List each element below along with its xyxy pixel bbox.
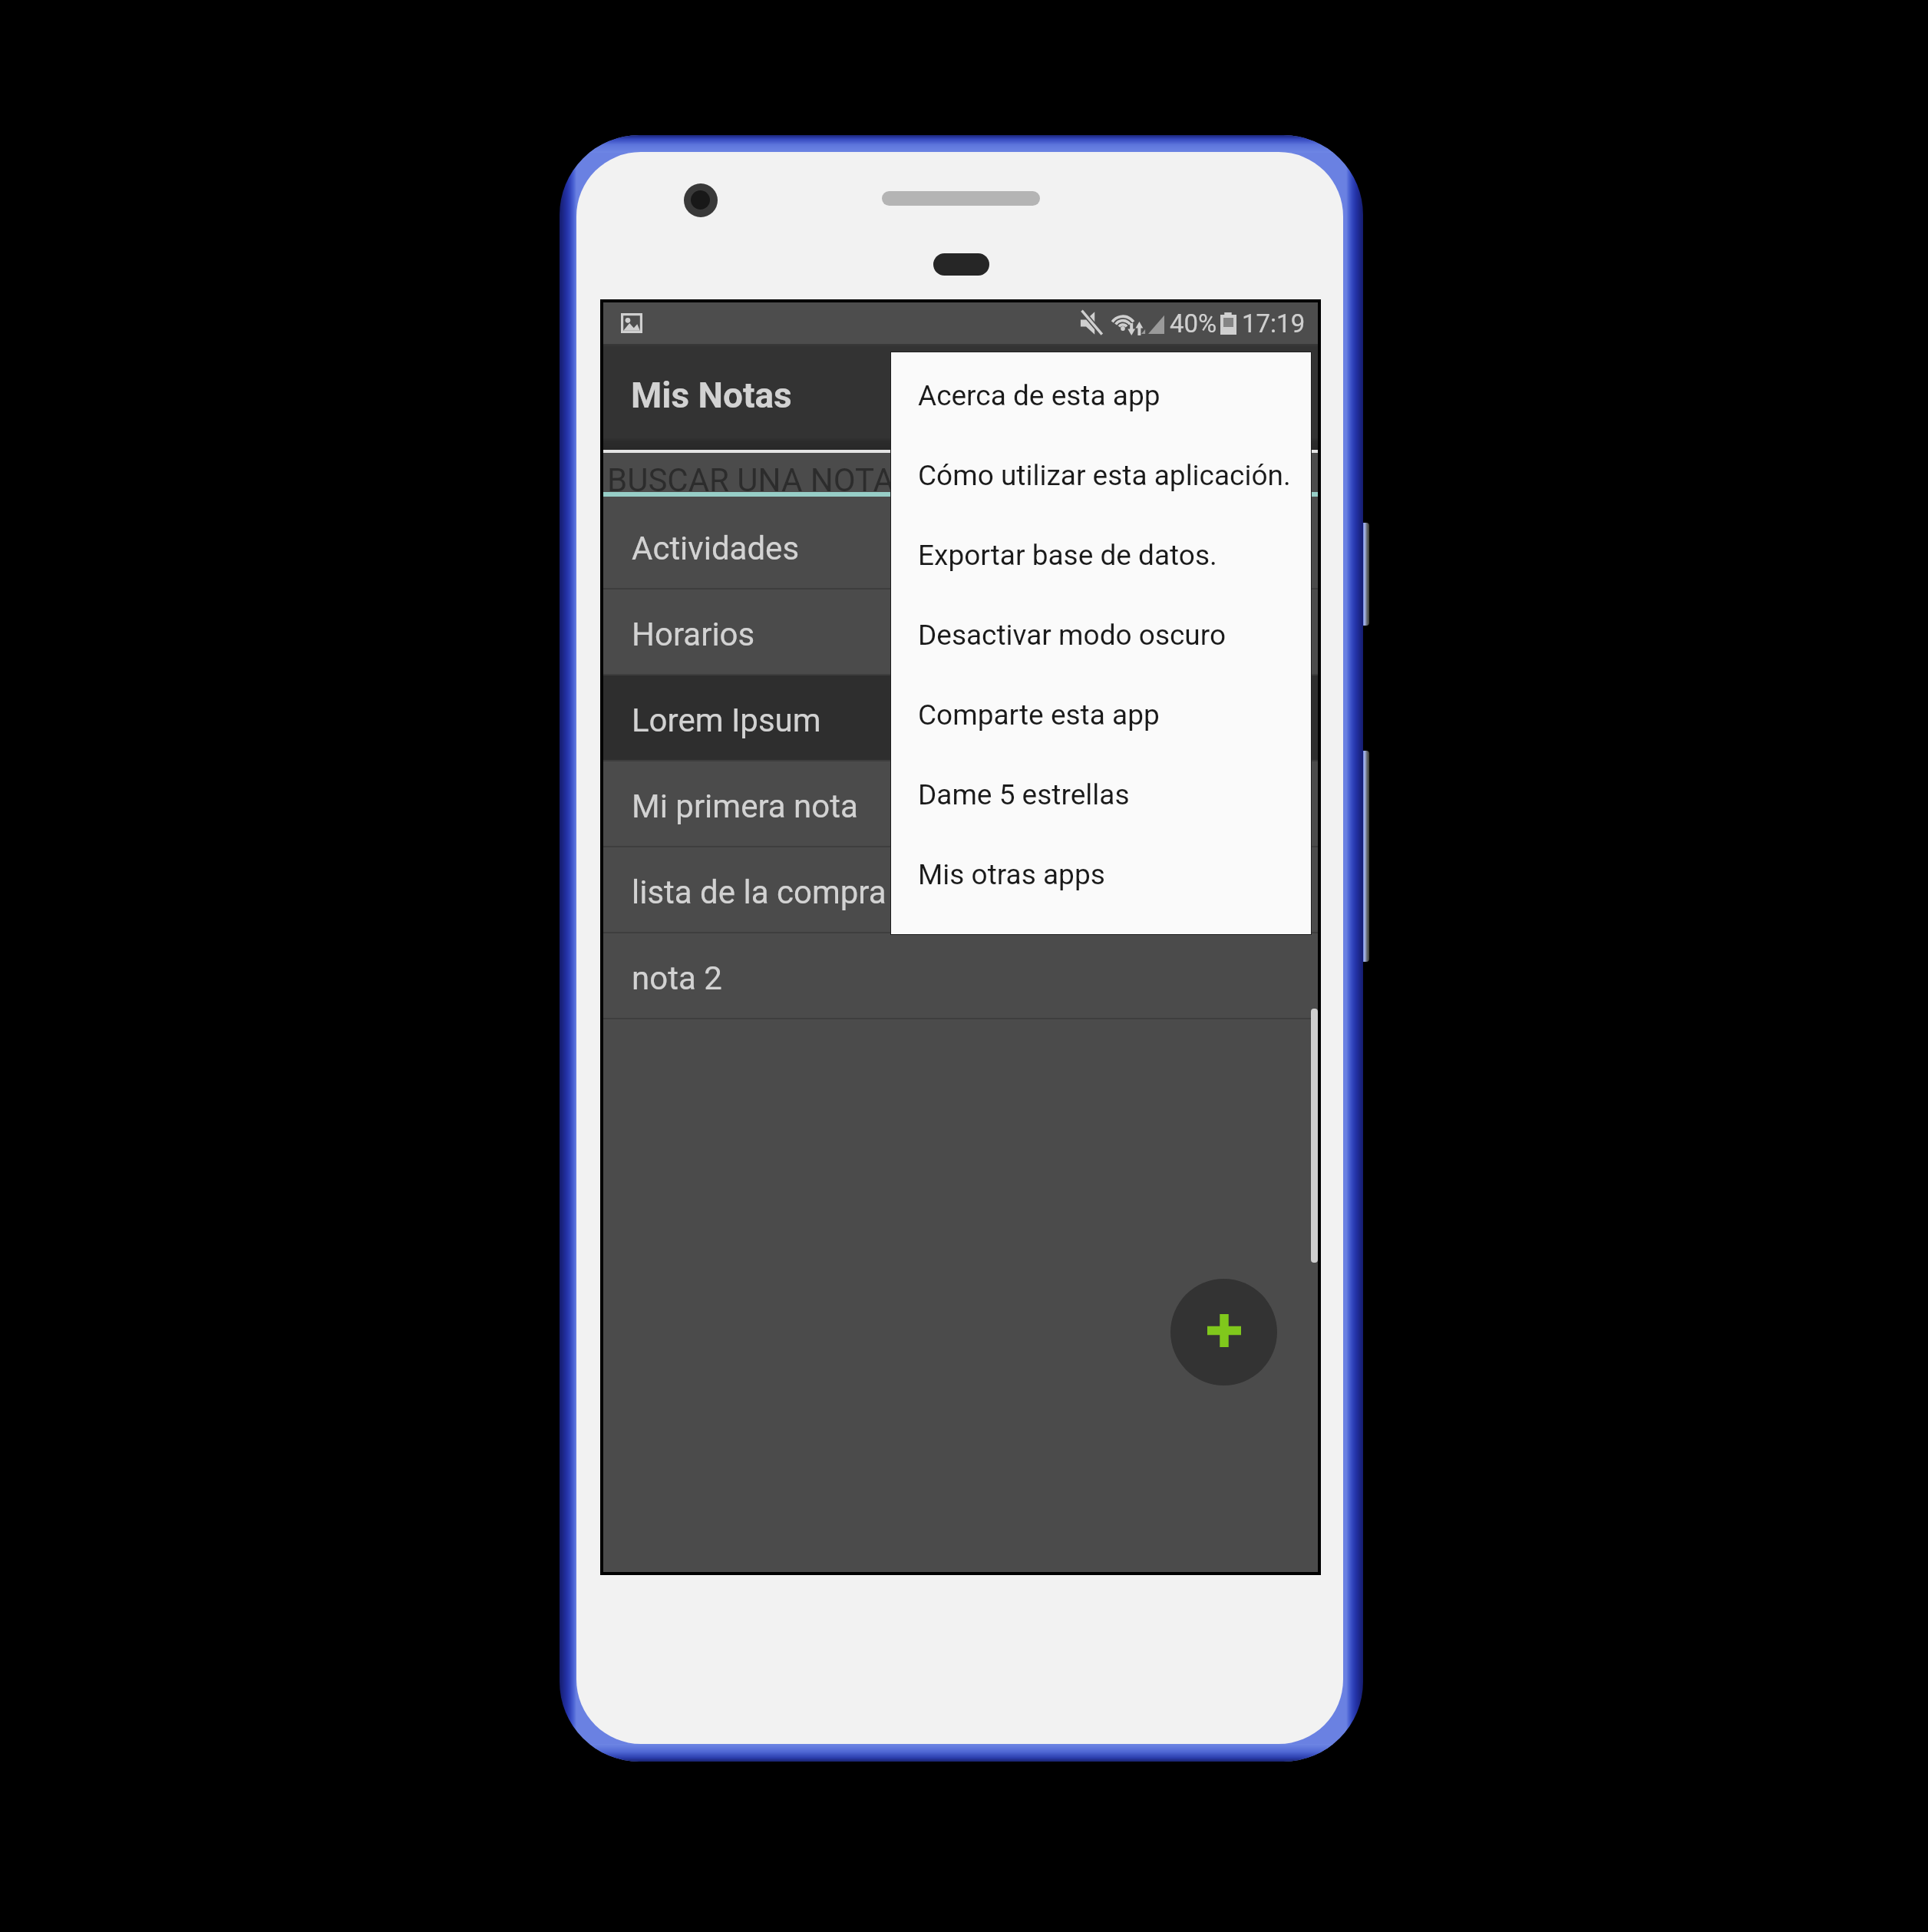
button[interactable]: Add note xyxy=(1170,1279,1277,1385)
button[interactable]: Lorem Ipsum xyxy=(603,675,1318,761)
button[interactable]: Exportar base de datos. xyxy=(891,515,1311,595)
button[interactable]: Comparte esta app xyxy=(891,675,1311,755)
staticText: Horarios xyxy=(632,616,755,653)
button[interactable]: Horarios xyxy=(603,590,1318,675)
staticText: Comparte esta app xyxy=(918,698,1160,732)
button[interactable]: Mis otras apps xyxy=(891,834,1311,914)
staticText: Cómo utilizar esta aplicación. xyxy=(918,459,1291,492)
staticText: nota 2 xyxy=(632,959,722,997)
staticText: Desactivar modo oscuro xyxy=(918,619,1226,652)
button[interactable]: nota 2 xyxy=(603,933,1318,1019)
staticText: 17:19 xyxy=(1242,309,1306,339)
staticText: lista de la compra xyxy=(632,874,886,911)
button[interactable]: Actividades xyxy=(603,504,1318,590)
staticText: Lorem Ipsum xyxy=(632,702,821,739)
staticText: BUSCAR UNA NOTA xyxy=(607,461,894,499)
button[interactable]: Dame 5 estrellas xyxy=(891,755,1311,834)
button[interactable]: Cómo utilizar esta aplicación. xyxy=(891,435,1311,515)
button[interactable]: lista de la compra xyxy=(603,847,1318,933)
staticText: Exportar base de datos. xyxy=(918,539,1217,572)
staticText: Acerca de esta app xyxy=(918,379,1160,412)
staticText: Mis otras apps xyxy=(918,858,1105,891)
staticText: Dame 5 estrellas xyxy=(918,778,1130,811)
button[interactable]: Acerca de esta app xyxy=(891,355,1311,435)
staticText: Mi primera nota xyxy=(632,788,858,825)
button[interactable]: Desactivar modo oscuro xyxy=(891,595,1311,675)
staticText: 40% xyxy=(1170,309,1217,339)
button[interactable]: BUSCAR UNA NOTA xyxy=(603,453,1318,504)
button[interactable]: Mi primera nota xyxy=(603,761,1318,847)
staticText: Mis Notas xyxy=(631,375,792,416)
staticText: Actividades xyxy=(632,530,800,567)
